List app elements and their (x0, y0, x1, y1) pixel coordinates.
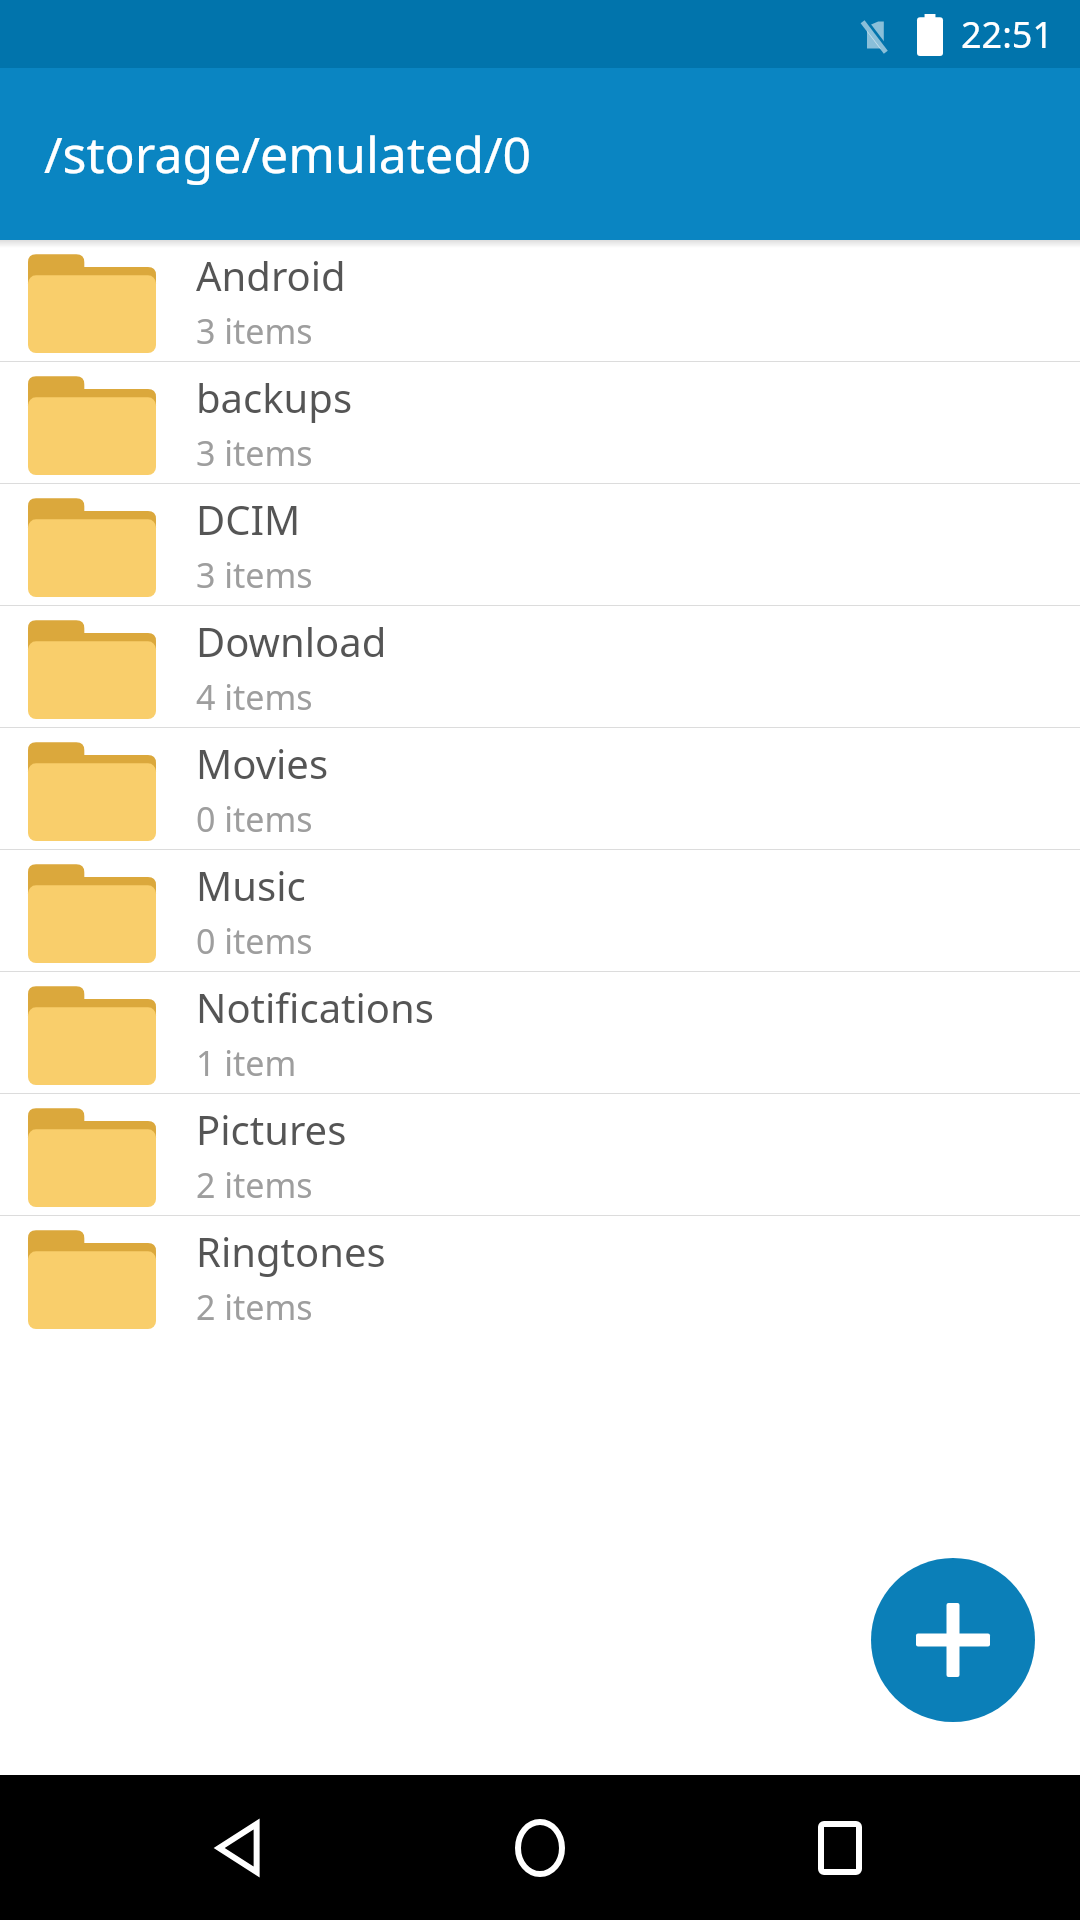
staticText: DCIM (196, 492, 301, 546)
staticText: 4 items (196, 674, 313, 720)
staticText: Music (196, 858, 306, 912)
staticText: Ringtones (196, 1224, 386, 1278)
staticText: backups (196, 370, 353, 424)
button[interactable]: Music (0, 850, 1080, 971)
staticText: Android (196, 248, 346, 302)
staticText: 3 items (196, 552, 313, 598)
staticText: 3 items (196, 430, 313, 476)
button[interactable]: Android (0, 240, 1080, 361)
staticText: 2 items (196, 1284, 313, 1330)
button[interactable]: Back (180, 1788, 300, 1908)
button[interactable]: Movies (0, 728, 1080, 849)
staticText: 22:51 (961, 10, 1054, 59)
staticText: Notifications (196, 980, 434, 1034)
staticText: 3 items (196, 308, 313, 354)
staticText: /storage/emulated/0 (44, 120, 532, 188)
staticText: Download (196, 614, 387, 668)
button[interactable]: backups (0, 362, 1080, 483)
button[interactable]: Notifications (0, 972, 1080, 1093)
button[interactable]: Ringtones (0, 1216, 1080, 1337)
staticText: 0 items (196, 796, 313, 842)
button[interactable]: Recents (780, 1788, 900, 1908)
staticText: 1 item (196, 1040, 297, 1086)
staticText: 0 items (196, 918, 313, 964)
button[interactable]: Add (871, 1558, 1035, 1722)
staticText: Movies (196, 736, 329, 790)
button[interactable]: Home (480, 1788, 600, 1908)
staticText: Pictures (196, 1102, 347, 1156)
staticText: 2 items (196, 1162, 313, 1208)
button[interactable]: Pictures (0, 1094, 1080, 1215)
button[interactable]: DCIM (0, 484, 1080, 605)
button[interactable]: Download (0, 606, 1080, 727)
